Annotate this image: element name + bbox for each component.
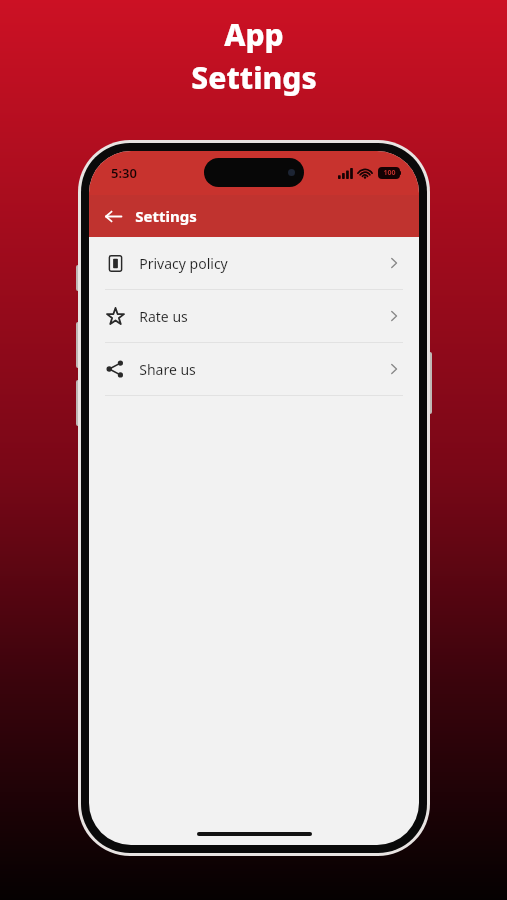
button[interactable]: Share us — [89, 343, 419, 395]
staticText: Rate us — [139, 307, 188, 326]
button[interactable]: Rate us — [89, 290, 419, 342]
staticText: Privacy policy — [139, 254, 228, 273]
staticText: App — [224, 14, 284, 55]
staticText: Share us — [139, 360, 196, 379]
button[interactable]: Back — [95, 198, 131, 234]
staticText: Settings — [191, 57, 317, 98]
staticText: Settings — [135, 206, 197, 226]
button[interactable]: Privacy policy — [89, 237, 419, 289]
staticText: 5:30 — [111, 164, 137, 182]
staticText: 100 — [383, 168, 396, 178]
